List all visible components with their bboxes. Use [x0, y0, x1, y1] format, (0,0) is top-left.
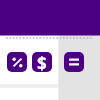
button[interactable]: Amount	[32, 52, 52, 72]
staticText: $	[37, 52, 47, 72]
button[interactable]: Equals	[64, 52, 84, 72]
button[interactable]: Percent	[7, 52, 27, 72]
